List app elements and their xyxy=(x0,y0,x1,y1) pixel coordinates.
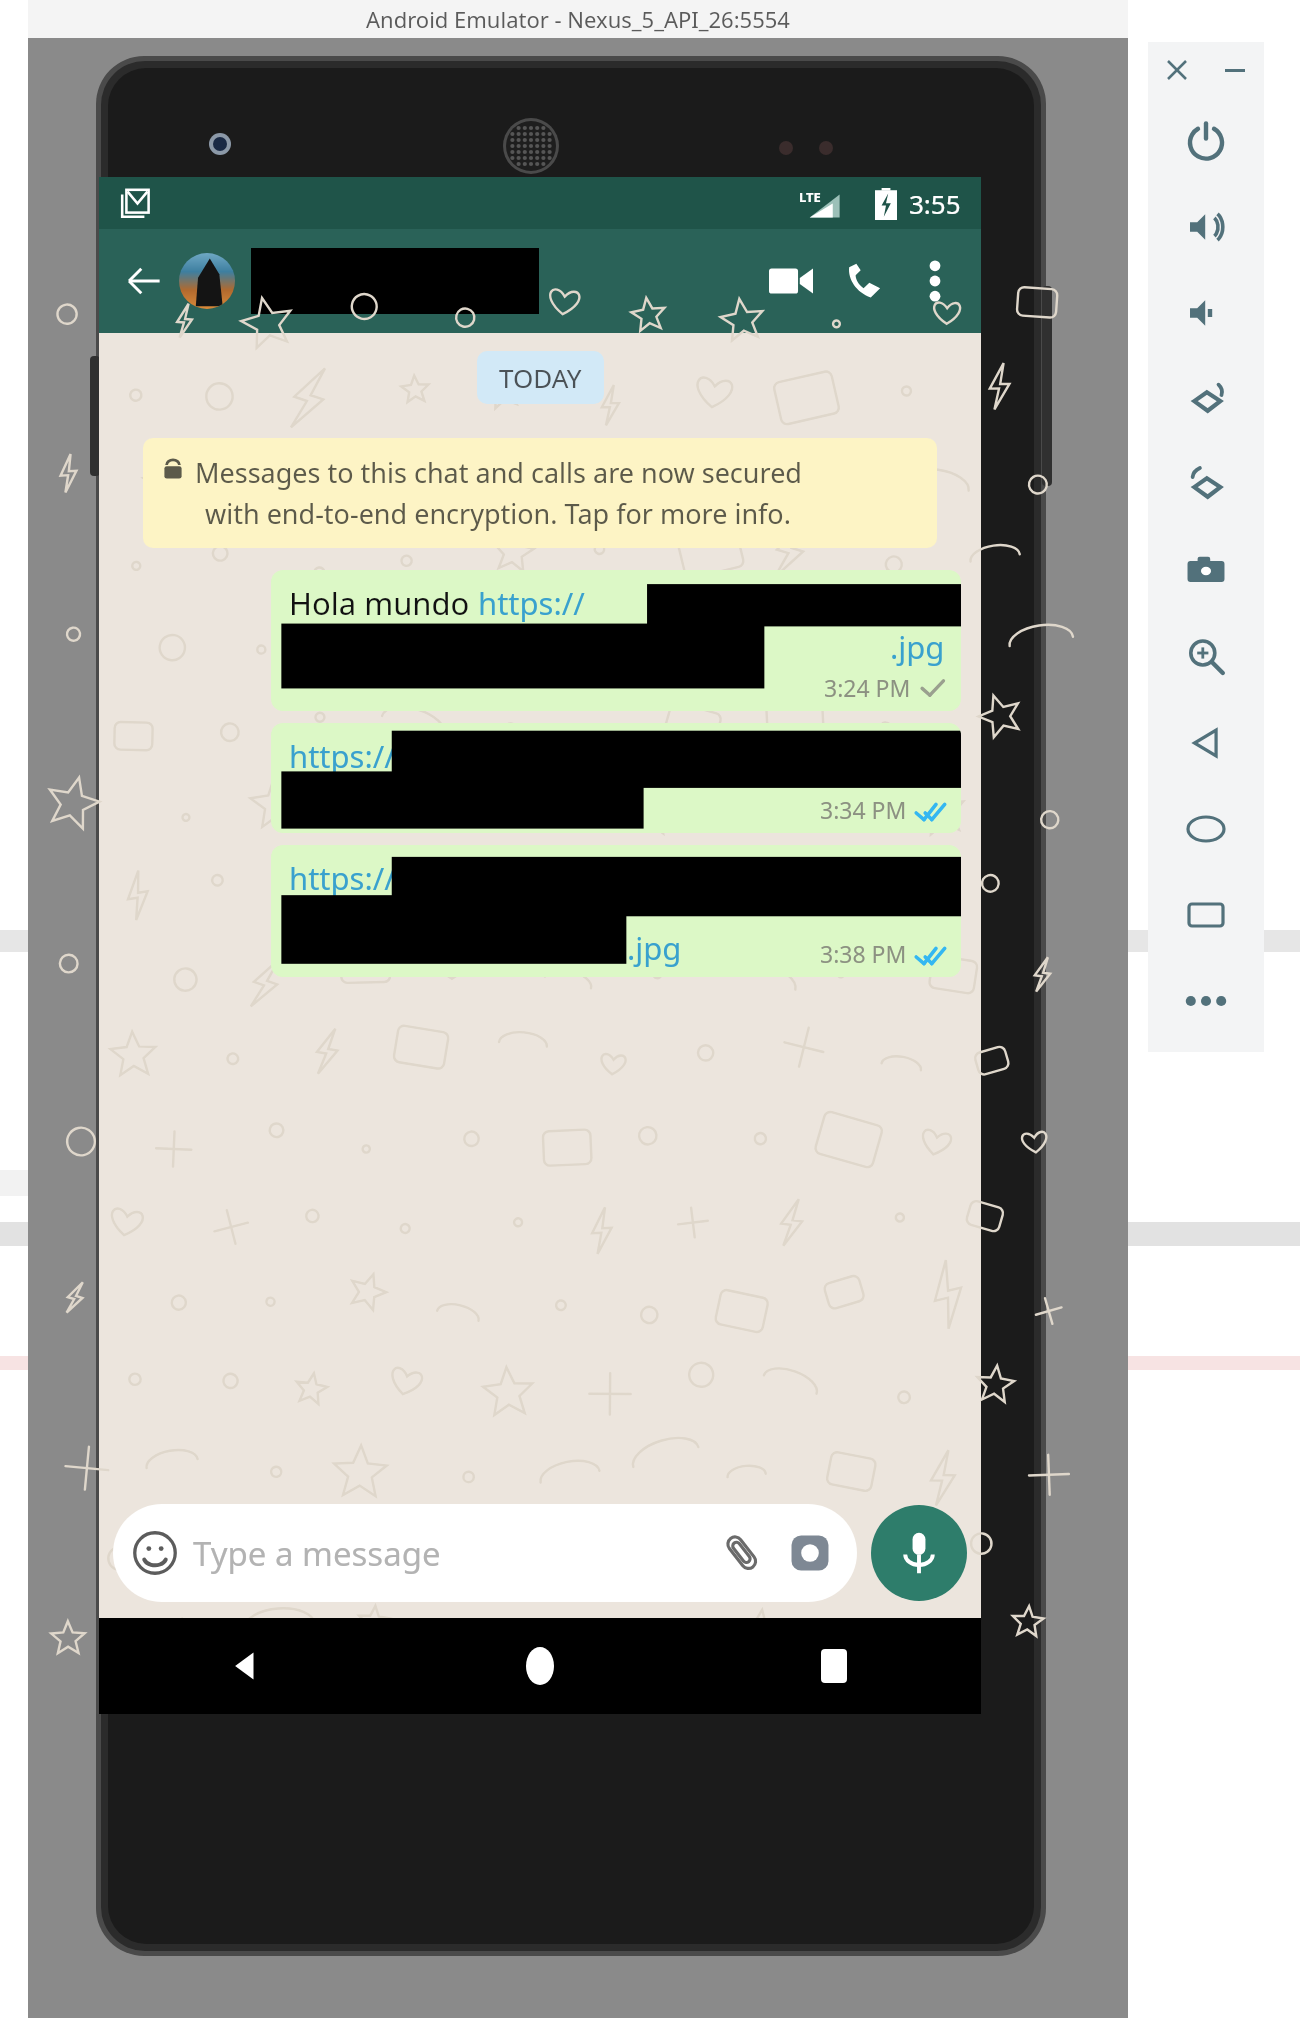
button[interactable]: Close xyxy=(1148,42,1206,98)
staticText: 3:34 PM xyxy=(820,794,907,825)
button[interactable]: Take screenshot xyxy=(1148,528,1264,614)
button[interactable]: Type a message xyxy=(113,1504,857,1602)
button[interactable]: Overview xyxy=(1148,872,1264,958)
button[interactable]: Zoom xyxy=(1148,614,1264,700)
button[interactable]: Hola mundo xyxy=(271,570,961,711)
button[interactable]: Voice call xyxy=(835,251,895,311)
button[interactable] xyxy=(251,248,539,314)
button[interactable]: More xyxy=(1148,958,1264,1044)
staticText: 3:55 xyxy=(909,186,961,221)
staticText: 3:38 PM xyxy=(820,938,907,969)
button[interactable]: https:// xyxy=(271,723,961,833)
staticText: Hola mundo xyxy=(289,582,478,624)
staticText: https:// xyxy=(289,735,396,777)
button[interactable]: Minimize xyxy=(1206,42,1264,98)
staticText: .jpg xyxy=(890,626,945,668)
button[interactable]: Messages to this chat and calls are now … xyxy=(143,438,937,548)
button[interactable]: Power xyxy=(1148,98,1264,184)
button[interactable]: Video call xyxy=(761,251,821,311)
button[interactable]: Back xyxy=(1148,700,1264,786)
button[interactable]: TODAY xyxy=(477,351,604,404)
staticText: Messages to this chat and calls are now … xyxy=(195,454,802,491)
button[interactable]: Home xyxy=(1148,786,1264,872)
button[interactable]: Volume up xyxy=(1148,184,1264,270)
button[interactable]: Back xyxy=(113,250,175,312)
staticText: l.jpg xyxy=(619,927,682,969)
button[interactable]: Camera xyxy=(783,1526,837,1580)
staticText: Android Emulator - Nexus_5_API_26:5554 xyxy=(366,4,790,34)
button[interactable]: Recents xyxy=(687,1618,981,1714)
staticText: with end-to-end encryption. Tap for more… xyxy=(205,495,791,532)
staticText: .jpg xyxy=(589,783,644,825)
button[interactable]: Contact photo xyxy=(179,253,235,309)
button[interactable]: More options xyxy=(905,251,965,311)
staticText: 3:24 PM xyxy=(824,672,911,703)
button[interactable]: https:// xyxy=(271,845,961,977)
button[interactable]: Home xyxy=(393,1618,687,1714)
button[interactable]: Rotate right xyxy=(1148,442,1264,528)
button[interactable]: Attach xyxy=(715,1526,769,1580)
staticText: LTE xyxy=(799,188,821,206)
button[interactable]: Volume down xyxy=(1148,270,1264,356)
button[interactable]: Back xyxy=(99,1618,393,1714)
button[interactable]: Record voice message xyxy=(871,1505,967,1601)
button[interactable]: Rotate left xyxy=(1148,356,1264,442)
staticText: https:// xyxy=(289,857,396,899)
staticText: https:// xyxy=(478,582,585,624)
staticText: TODAY xyxy=(499,360,582,395)
staticText: Type a message xyxy=(193,1531,441,1576)
